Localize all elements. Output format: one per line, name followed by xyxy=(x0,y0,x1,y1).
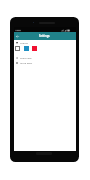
staticText: Settings xyxy=(39,34,50,38)
staticText: More apps xyxy=(20,61,33,64)
staticText: Share app xyxy=(20,56,32,59)
button[interactable]: Share app xyxy=(16,56,34,59)
button[interactable]: Theme xyxy=(16,41,30,44)
button[interactable]: Light theme xyxy=(15,46,20,51)
button[interactable]: More apps xyxy=(16,61,35,64)
staticText: Theme xyxy=(20,41,28,44)
button[interactable]: Navigate up xyxy=(14,32,21,40)
